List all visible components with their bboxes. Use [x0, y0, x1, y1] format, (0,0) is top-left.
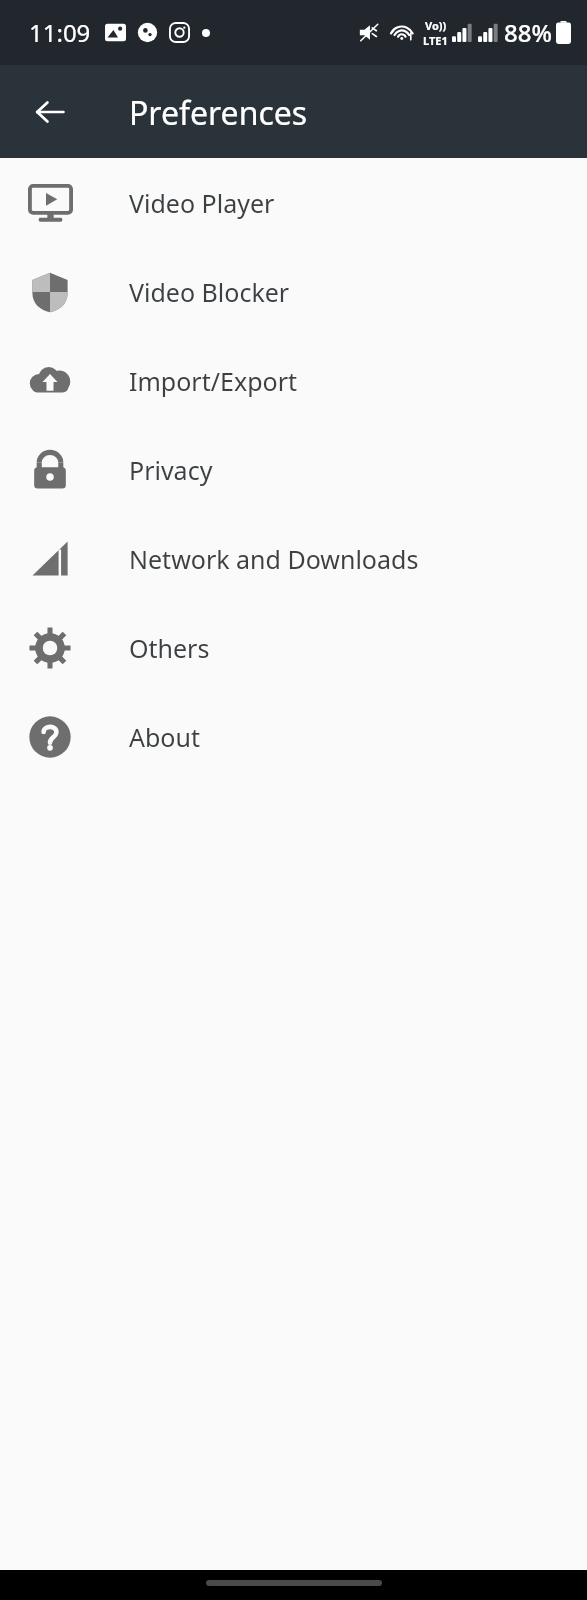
- staticText: 88%: [504, 16, 552, 49]
- staticText: Video Player: [129, 186, 275, 220]
- staticText: Privacy: [129, 453, 213, 487]
- staticText: Import/Export: [129, 364, 297, 398]
- button[interactable]: Video Player: [0, 158, 587, 247]
- staticText: LTE1: [423, 33, 448, 48]
- button[interactable]: Import/Export: [0, 336, 587, 425]
- staticText: Vo)): [425, 18, 447, 33]
- staticText: Preferences: [129, 91, 308, 135]
- button[interactable]: Others: [0, 603, 587, 692]
- button[interactable]: About: [0, 692, 587, 781]
- button[interactable]: Back: [16, 78, 84, 146]
- staticText: Video Blocker: [129, 275, 290, 309]
- staticText: Network and Downloads: [129, 542, 419, 576]
- button[interactable]: Privacy: [0, 425, 587, 514]
- staticText: 11:09: [29, 16, 91, 49]
- staticText: Others: [129, 631, 210, 665]
- button[interactable]: Network and Downloads: [0, 514, 587, 603]
- button[interactable]: Video Blocker: [0, 247, 587, 336]
- staticText: About: [129, 720, 200, 754]
